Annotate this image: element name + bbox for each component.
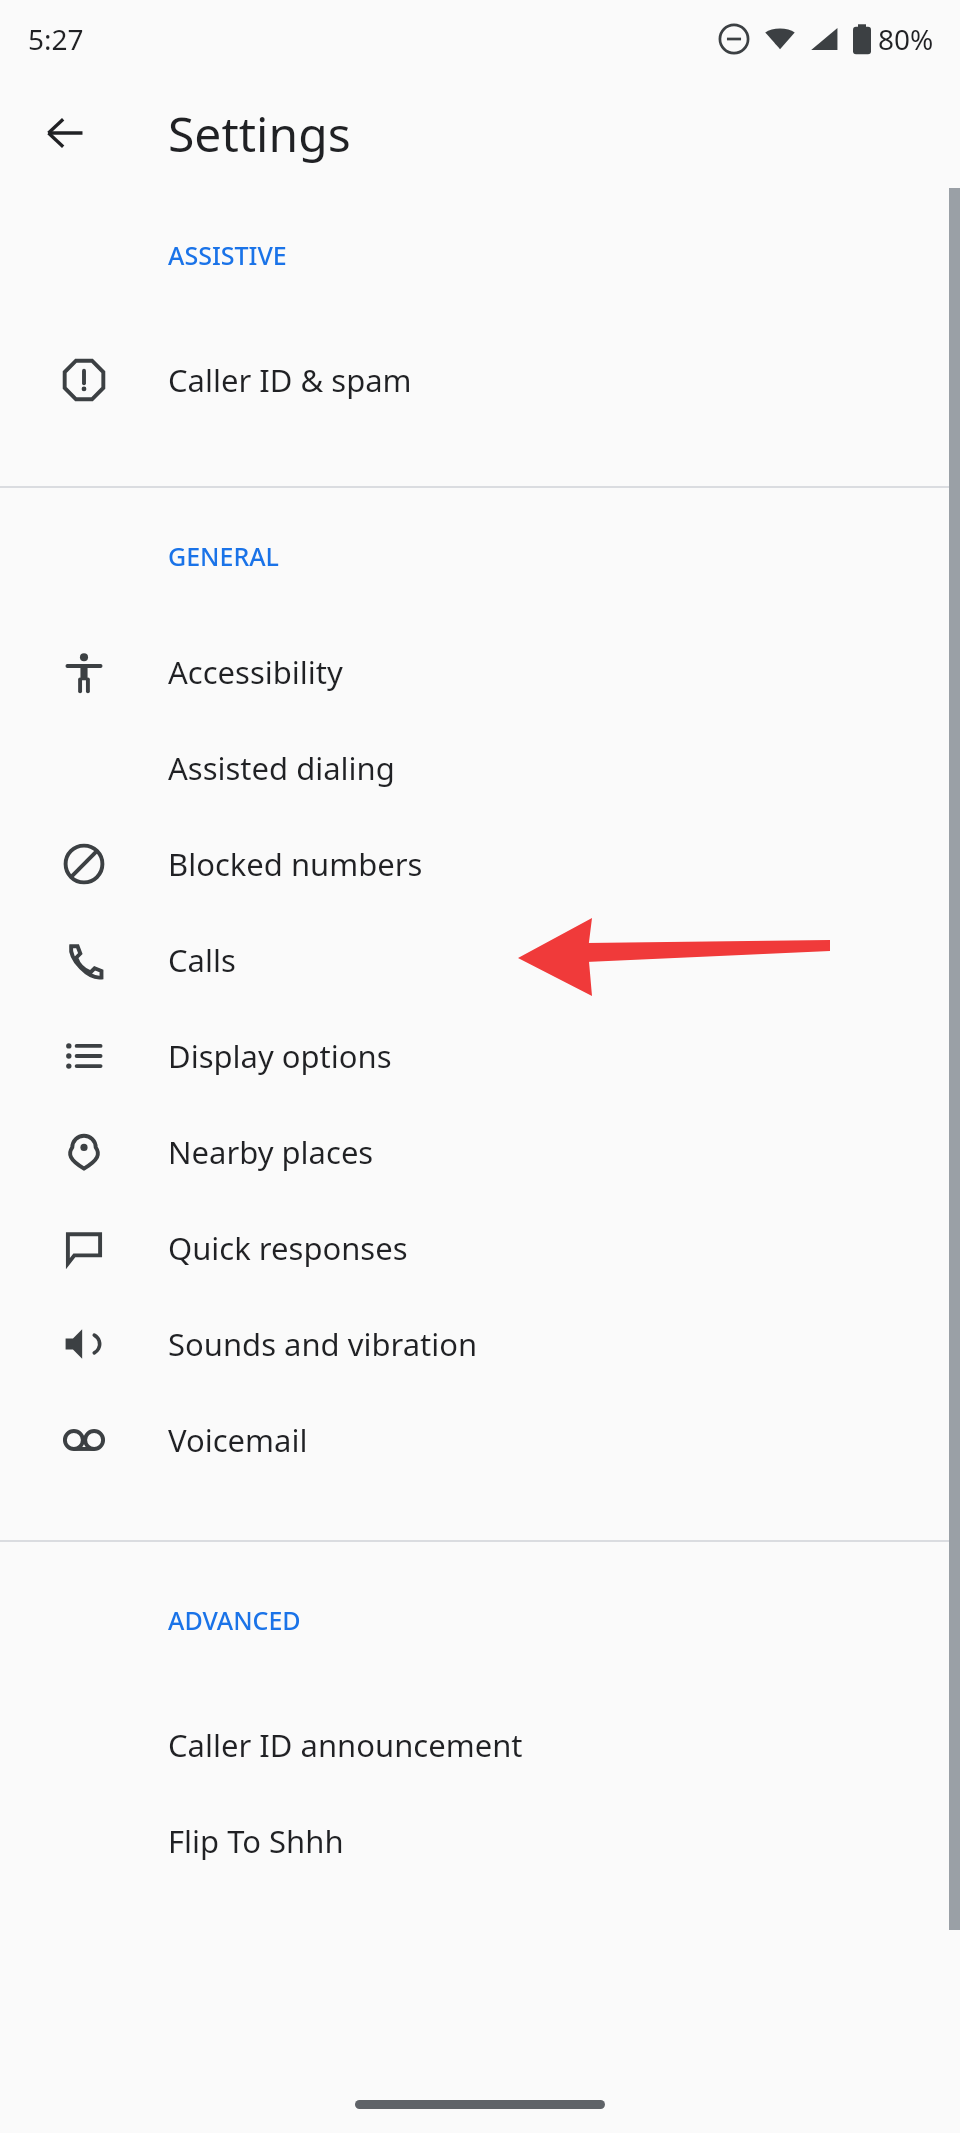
button[interactable]: Quick responses <box>0 1200 960 1296</box>
staticText: Caller ID & spam <box>168 359 412 401</box>
button[interactable]: Blocked numbers <box>0 816 960 912</box>
staticText: 5:27 <box>28 20 84 58</box>
staticText: Settings <box>168 101 351 166</box>
staticText: Sounds and vibration <box>168 1323 478 1365</box>
staticText: Nearby places <box>168 1131 374 1173</box>
staticText: Display options <box>168 1035 392 1077</box>
button[interactable]: Sounds and vibration <box>0 1296 960 1392</box>
button[interactable]: Flip To Shhh <box>0 1793 960 1889</box>
staticText: Blocked numbers <box>168 843 423 885</box>
staticText: GENERAL <box>168 539 279 573</box>
staticText: Quick responses <box>168 1227 408 1269</box>
button[interactable]: Caller ID announcement <box>0 1697 960 1793</box>
button[interactable]: Caller ID & spam <box>0 322 960 438</box>
button[interactable]: Display options <box>0 1008 960 1104</box>
staticText: Voicemail <box>168 1419 308 1461</box>
button[interactable]: Back <box>0 78 130 188</box>
staticText: ADVANCED <box>168 1603 301 1637</box>
button[interactable]: Nearby places <box>0 1104 960 1200</box>
staticText: Flip To Shhh <box>168 1820 344 1862</box>
staticText: Assisted dialing <box>168 747 395 789</box>
button[interactable]: Voicemail <box>0 1392 960 1488</box>
staticText: Calls <box>168 939 236 981</box>
button[interactable]: Accessibility <box>0 624 960 720</box>
button[interactable]: Calls <box>0 912 960 1008</box>
staticText: ASSISTIVE <box>168 238 287 272</box>
staticText: 80% <box>878 20 934 58</box>
staticText: Accessibility <box>168 651 343 693</box>
staticText: Caller ID announcement <box>168 1724 523 1766</box>
button[interactable]: Assisted dialing <box>0 720 960 816</box>
